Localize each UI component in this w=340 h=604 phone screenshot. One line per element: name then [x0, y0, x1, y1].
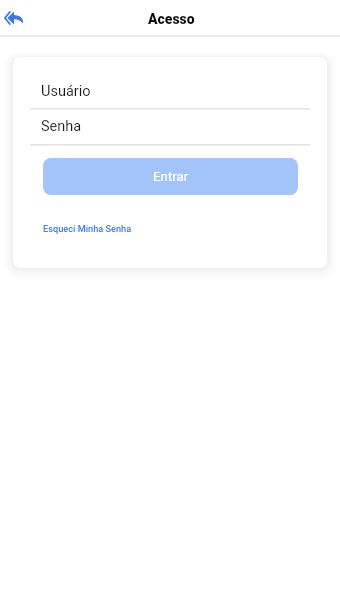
button[interactable]: Senha	[30, 108, 310, 144]
staticText: Entrar	[153, 169, 189, 185]
staticText: Senha	[41, 118, 82, 135]
staticText: Esqueci Minha Senha	[43, 223, 132, 234]
button[interactable]: Usuário	[30, 71, 310, 112]
staticText: Usuário	[41, 83, 91, 100]
button[interactable]: Voltar	[0, 1, 30, 37]
staticText: Acesso	[148, 11, 195, 27]
button[interactable]: Entrar	[43, 158, 298, 195]
button[interactable]: Esqueci Minha Senha	[39, 219, 136, 238]
